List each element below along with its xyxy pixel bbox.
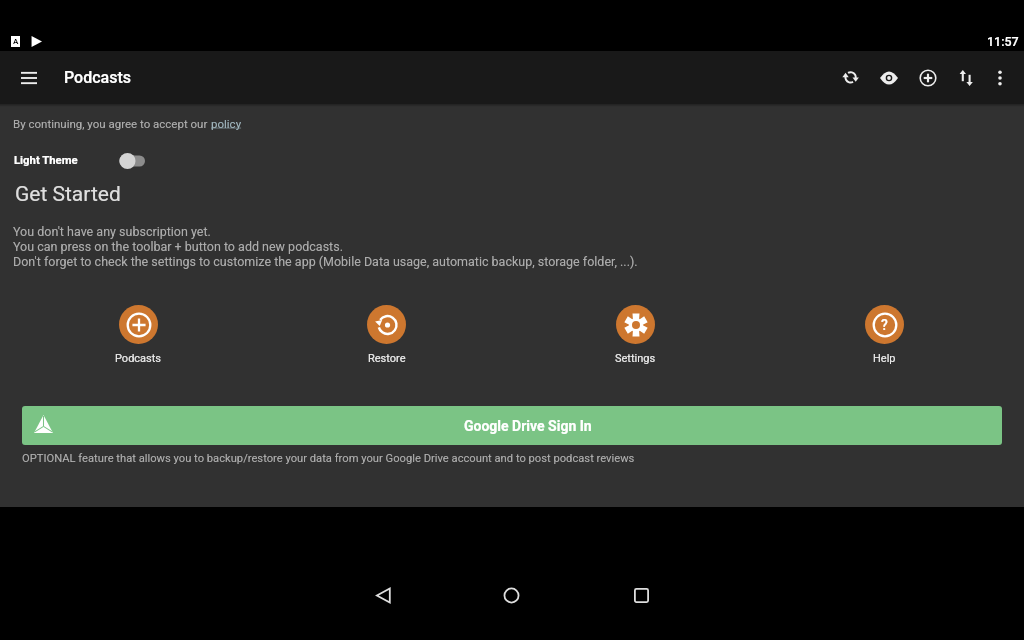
staticText: 11:57 <box>987 34 1019 49</box>
button[interactable]: Back <box>357 569 409 621</box>
button[interactable]: Sort <box>948 51 984 104</box>
button[interactable]: Settings <box>511 305 760 365</box>
button[interactable]: ? <box>760 305 1009 365</box>
button[interactable]: Refresh <box>834 51 870 104</box>
button[interactable]: Home <box>485 569 537 621</box>
button[interactable]: Restore <box>262 305 511 365</box>
button[interactable]: Light Theme toggle <box>113 149 155 173</box>
staticText: Don't forget to check the settings to cu… <box>13 254 638 269</box>
button[interactable]: Recent apps <box>615 569 667 621</box>
staticText: Podcasts <box>115 352 162 365</box>
staticText: ? <box>881 317 888 333</box>
button[interactable]: Google Drive Sign In <box>22 406 1002 445</box>
staticText: Settings <box>615 352 656 365</box>
staticText: A <box>13 37 19 46</box>
staticText: Restore <box>368 352 406 365</box>
button[interactable]: Add podcast <box>910 51 946 104</box>
button[interactable]: Podcasts <box>14 305 262 365</box>
staticText: You don't have any subscription yet. <box>13 224 211 239</box>
staticText: By continuing, you agree to accept our <box>13 117 211 130</box>
button[interactable]: policy <box>211 117 242 130</box>
staticText: OPTIONAL feature that allows you to back… <box>22 452 635 465</box>
button[interactable]: More options <box>982 51 1018 104</box>
staticText: Get Started <box>15 182 121 207</box>
button[interactable]: Open navigation drawer <box>13 51 45 104</box>
staticText: Light Theme <box>14 154 78 167</box>
button[interactable]: Show / hide played <box>871 51 907 104</box>
staticText: Google Drive Sign In <box>464 418 592 434</box>
staticText: Help <box>873 352 896 365</box>
staticText: Podcasts <box>64 68 131 87</box>
staticText: You can press on the toolbar + button to… <box>13 239 343 254</box>
